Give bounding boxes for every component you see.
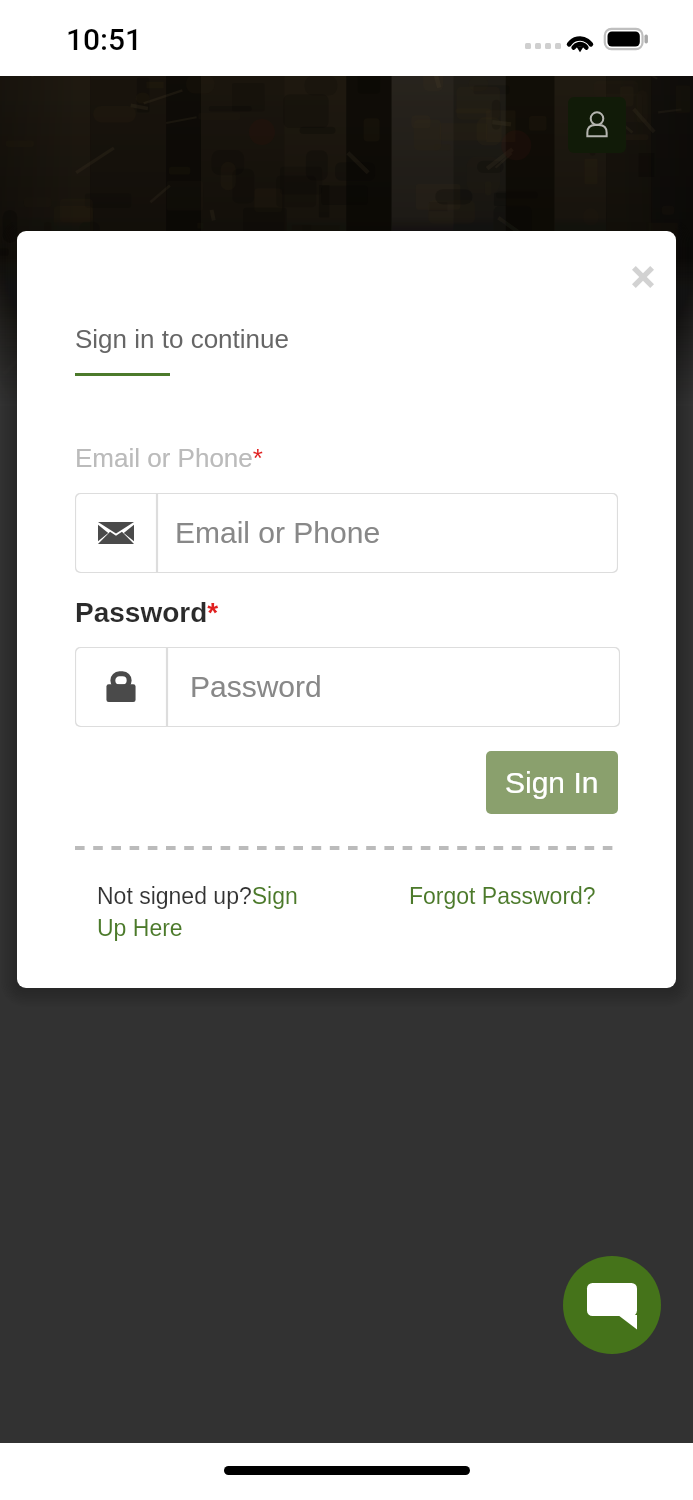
button[interactable]: Email or Phone [75, 493, 618, 573]
staticText: Password* [75, 597, 219, 628]
staticText: Not signed up?Sign Up Here [97, 883, 312, 941]
staticText: Password [190, 670, 322, 704]
button[interactable]: Chat [563, 1256, 661, 1354]
staticText: Sign In [505, 766, 599, 800]
staticText: Forgot Password? [409, 883, 596, 909]
staticText: Sign in to continue [75, 324, 289, 353]
button[interactable]: Sign In [486, 751, 618, 814]
staticText: Email or Phone [175, 516, 381, 550]
button[interactable]: Forgot Password? [409, 883, 596, 909]
staticText: 10:51 [66, 22, 143, 57]
staticText: Email or Phone* [75, 443, 263, 472]
button[interactable]: Account [568, 97, 626, 153]
button[interactable]: Not signed up?Sign Up Here [97, 883, 312, 941]
button[interactable]: Close [613, 247, 673, 307]
button[interactable]: Password [75, 647, 620, 727]
